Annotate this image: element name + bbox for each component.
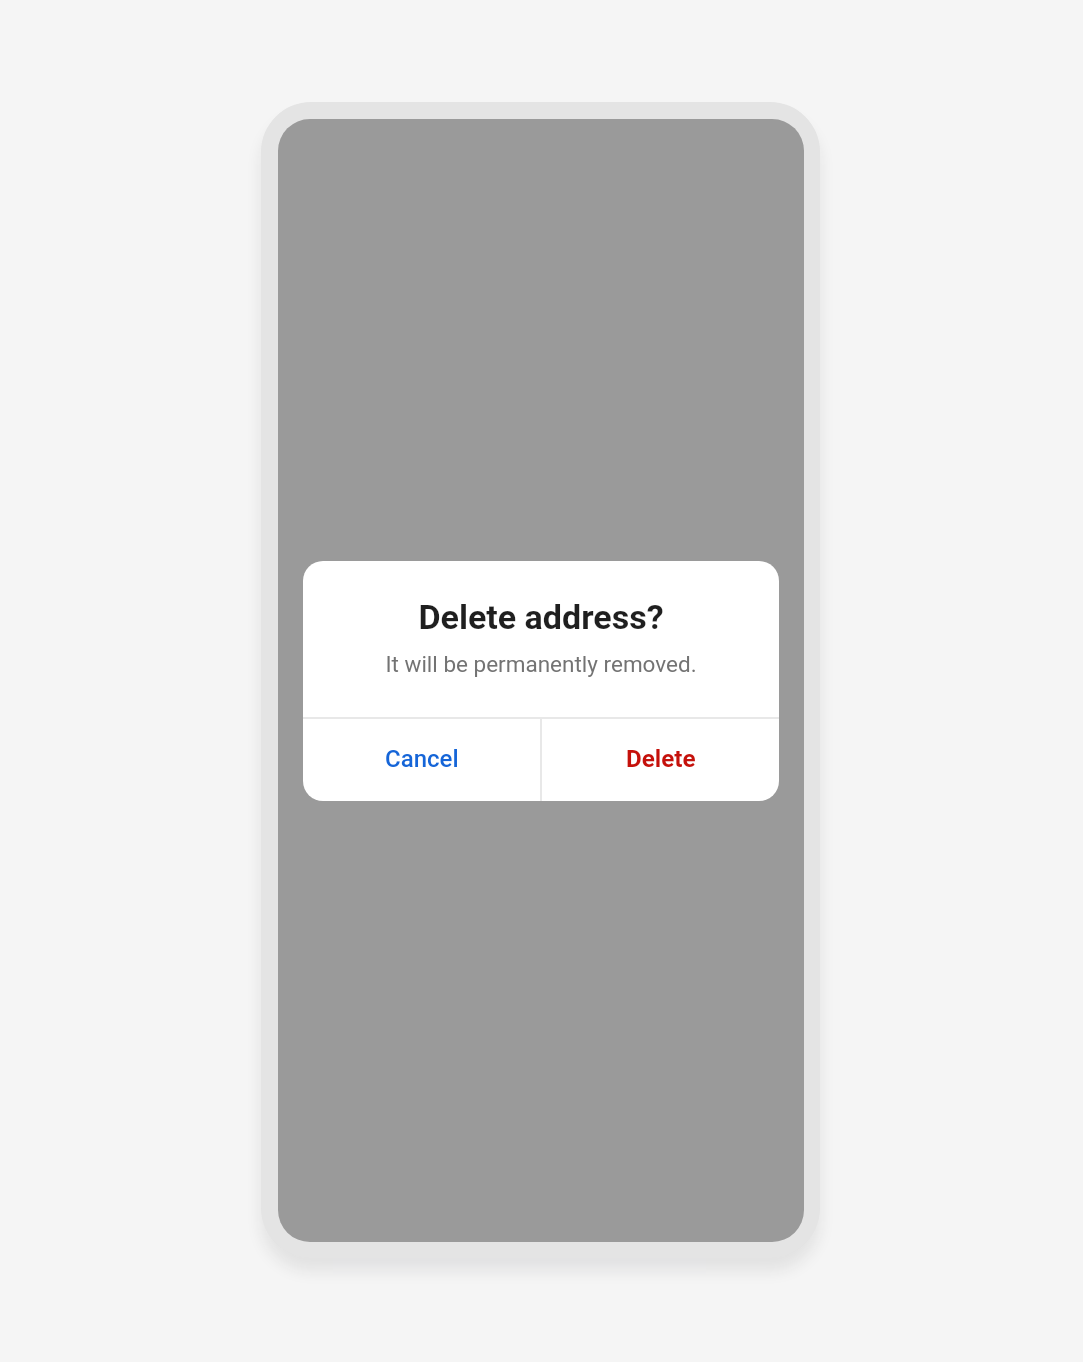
staticText: Delete bbox=[626, 745, 696, 773]
button[interactable]: Cancel bbox=[303, 719, 540, 801]
staticText: Delete address? bbox=[418, 597, 664, 637]
button[interactable]: Delete bbox=[542, 719, 779, 801]
staticText: Cancel bbox=[385, 745, 459, 773]
staticText: It will be permanently removed. bbox=[385, 651, 697, 677]
